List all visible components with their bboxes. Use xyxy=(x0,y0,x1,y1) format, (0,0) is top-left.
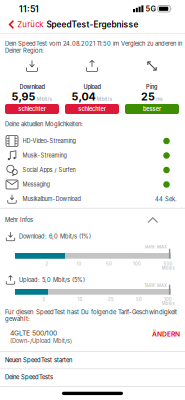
staticText: 5,04 xyxy=(71,90,95,103)
staticText: 50 xyxy=(106,261,112,267)
staticText: ms xyxy=(156,96,163,102)
staticText: Ping xyxy=(146,84,158,90)
staticText: 10 xyxy=(77,297,82,302)
staticText: Dein SpeedTest vom 24.08.2021 11:50 im V… xyxy=(5,40,182,47)
staticText: 500 xyxy=(163,261,172,267)
button[interactable]: Mehr Infos xyxy=(0,212,185,228)
staticText: 4GLTE 500/100 xyxy=(10,329,57,337)
staticText: 44 Sek. xyxy=(155,195,177,203)
button[interactable]: ÄNDERN xyxy=(140,327,180,341)
staticText: Upload xyxy=(83,84,100,90)
staticText: 100 xyxy=(164,297,172,302)
button[interactable]: Neuen SpeedTest starten xyxy=(0,352,185,368)
staticText: Deine aktuellen Möglichkeiten: xyxy=(5,120,83,128)
staticText: Mbit/s xyxy=(36,96,52,102)
staticText: 2 xyxy=(45,261,48,267)
staticText: (Down-/Upload Mbit/s) xyxy=(10,337,72,344)
staticText: Social Apps / Surfen xyxy=(22,167,75,173)
staticText: 25 xyxy=(108,297,114,302)
staticText: TARIF MAX xyxy=(144,283,167,288)
staticText: schlechter xyxy=(18,106,46,112)
staticText: 11:51 xyxy=(19,4,39,14)
staticText: ÄNDERN xyxy=(152,330,180,338)
staticText: Mbit/s xyxy=(161,265,174,271)
staticText: TARIF MAX xyxy=(144,244,167,250)
staticText: gewählt: xyxy=(5,315,30,322)
staticText: Download: 6,0 Mbit/s (1%) xyxy=(19,233,91,240)
staticText: 100 xyxy=(133,261,141,267)
button[interactable]: Zurück xyxy=(5,16,47,32)
staticText: HD-Video-Streaming xyxy=(22,138,75,144)
staticText: 50 xyxy=(136,297,142,302)
staticText: Download xyxy=(19,84,44,90)
staticText: Musikalbum-Download xyxy=(22,196,80,202)
staticText: 5,95 xyxy=(11,90,35,103)
staticText: schlechter xyxy=(78,106,106,112)
staticText: 5 xyxy=(42,297,45,302)
staticText: 25 xyxy=(141,90,155,103)
staticText: Für diesen SpeedTest hast Du folgende Ta… xyxy=(5,308,177,316)
staticText: besser xyxy=(143,106,161,112)
staticText: Mbit/s xyxy=(161,301,174,306)
staticText: 5G xyxy=(145,4,155,13)
staticText: Musik-Streaming xyxy=(22,152,66,159)
staticText: Upload: 5,0 Mbit/s (5%) xyxy=(19,276,85,283)
staticText: Deiner Region: xyxy=(5,47,44,54)
staticText: SpeedTest-Ergebnisse xyxy=(46,19,138,29)
staticText: 10 xyxy=(76,261,81,267)
staticText: Neuen SpeedTest starten xyxy=(5,356,72,364)
staticText: Mehr Infos xyxy=(5,216,33,223)
staticText: Zurück xyxy=(17,20,43,29)
staticText: Deine SpeedTests xyxy=(5,373,53,381)
staticText: Mbit/s xyxy=(96,96,112,102)
staticText: Messaging xyxy=(22,181,49,188)
button[interactable]: Deine SpeedTests xyxy=(0,369,185,385)
